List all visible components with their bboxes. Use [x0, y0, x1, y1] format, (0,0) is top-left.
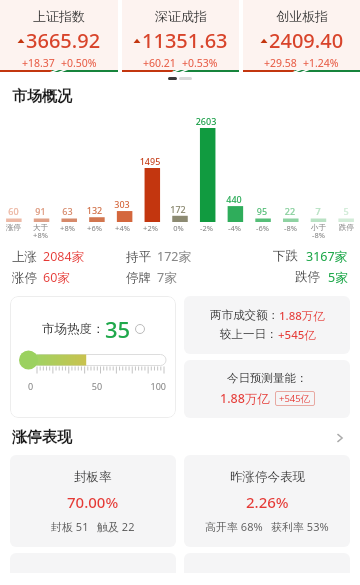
staticText: 昨涨停今表现 [230, 469, 305, 485]
staticText: 1.88万亿 [220, 390, 270, 407]
staticText: 跌停 [295, 269, 320, 285]
staticText: 下跌 [273, 248, 298, 264]
staticText: 市场概况 [12, 87, 72, 106]
staticText: +0.53% [182, 56, 218, 70]
staticText: 深证成指 [155, 8, 207, 24]
staticText: +18.37 [22, 56, 55, 70]
staticText: 今日预测量能： [227, 371, 308, 385]
staticText: 22 [276, 205, 304, 217]
staticText: 市场热度： [42, 321, 105, 337]
staticText: +0.50% [61, 56, 97, 70]
staticText: 涨停 [6, 223, 21, 232]
staticText: 3167家 [306, 248, 348, 265]
staticText: 上证指数 [33, 8, 85, 24]
staticText: 0 [28, 380, 74, 392]
staticText: 小于 -8% [311, 223, 326, 240]
staticText: 获利率 53% [271, 519, 329, 534]
staticText: +545亿 [278, 327, 316, 343]
button[interactable]: 封板率 [10, 455, 176, 547]
staticText: 创业板指 [276, 8, 328, 24]
other: 查看更多 [332, 430, 348, 446]
button[interactable]: 市场热度： [10, 296, 176, 418]
button[interactable]: 深证成指 [122, 0, 239, 72]
staticText: 2.26% [246, 492, 289, 512]
staticText: -8% [284, 223, 297, 233]
staticText: +60.21 [143, 56, 176, 70]
staticText: 1.88万亿 [279, 308, 325, 324]
staticText: +1.24% [303, 56, 339, 70]
button[interactable]: 昨涨停今表现 [184, 455, 350, 547]
staticText: 1495 [136, 155, 164, 167]
staticText: -2% [200, 223, 213, 233]
button[interactable]: 创业板指 [243, 0, 360, 72]
staticText: +545亿 [279, 392, 311, 405]
staticText: 2409.40 [269, 27, 344, 54]
button[interactable]: 涨停表现 [12, 428, 348, 447]
staticText: 触及 22 [97, 519, 135, 534]
button[interactable]: 两市成交额： [184, 296, 350, 354]
staticText: 303 [108, 198, 136, 210]
staticText: 5家 [328, 269, 348, 286]
button[interactable]: 今日预测量能： [184, 360, 350, 418]
staticText: 封板 51 [51, 519, 89, 534]
staticText: 0% [173, 223, 184, 233]
staticText: 涨停 [12, 270, 37, 286]
staticText: 封板率 [74, 469, 112, 485]
staticText: +29.58 [264, 56, 297, 70]
staticText: +6% [87, 223, 102, 233]
staticText: 100 [120, 380, 166, 392]
staticText: 较上一日： [220, 327, 278, 341]
staticText: 11351.63 [142, 27, 228, 54]
staticText: 60 [0, 205, 27, 217]
staticText: 高开率 68% [205, 519, 263, 534]
staticText: 172 [164, 203, 192, 215]
staticText: 172家 [157, 248, 191, 265]
staticText: 3665.92 [26, 27, 101, 54]
staticText: 7 [304, 205, 332, 217]
staticText: 大于 +8% [33, 223, 48, 240]
staticText: +8% [60, 223, 75, 233]
staticText: 两市成交额： [210, 308, 279, 322]
staticText: 95 [248, 205, 276, 217]
staticText: 63 [54, 205, 81, 217]
staticText: 50 [74, 380, 120, 392]
staticText: 35 [105, 314, 131, 344]
staticText: 60家 [43, 269, 70, 286]
staticText: 91 [27, 205, 54, 217]
staticText: 132 [81, 204, 108, 216]
staticText: -4% [228, 223, 241, 233]
staticText: 停牌 [126, 270, 151, 286]
staticText: 2084家 [43, 248, 85, 265]
staticText: +2% [143, 223, 158, 233]
staticText: 5 [332, 205, 360, 217]
staticText: 440 [220, 193, 248, 205]
staticText: -6% [256, 223, 269, 233]
staticText: 跌停 [339, 223, 354, 232]
staticText: +4% [115, 223, 130, 233]
staticText: 70.00% [67, 492, 119, 512]
staticText: 涨停表现 [12, 428, 72, 447]
staticText: 2603 [192, 115, 220, 127]
staticText: 持平 [126, 249, 151, 265]
staticText: 7家 [157, 269, 177, 286]
staticText: 上涨 [12, 249, 37, 265]
button[interactable]: 上证指数 [0, 0, 118, 72]
